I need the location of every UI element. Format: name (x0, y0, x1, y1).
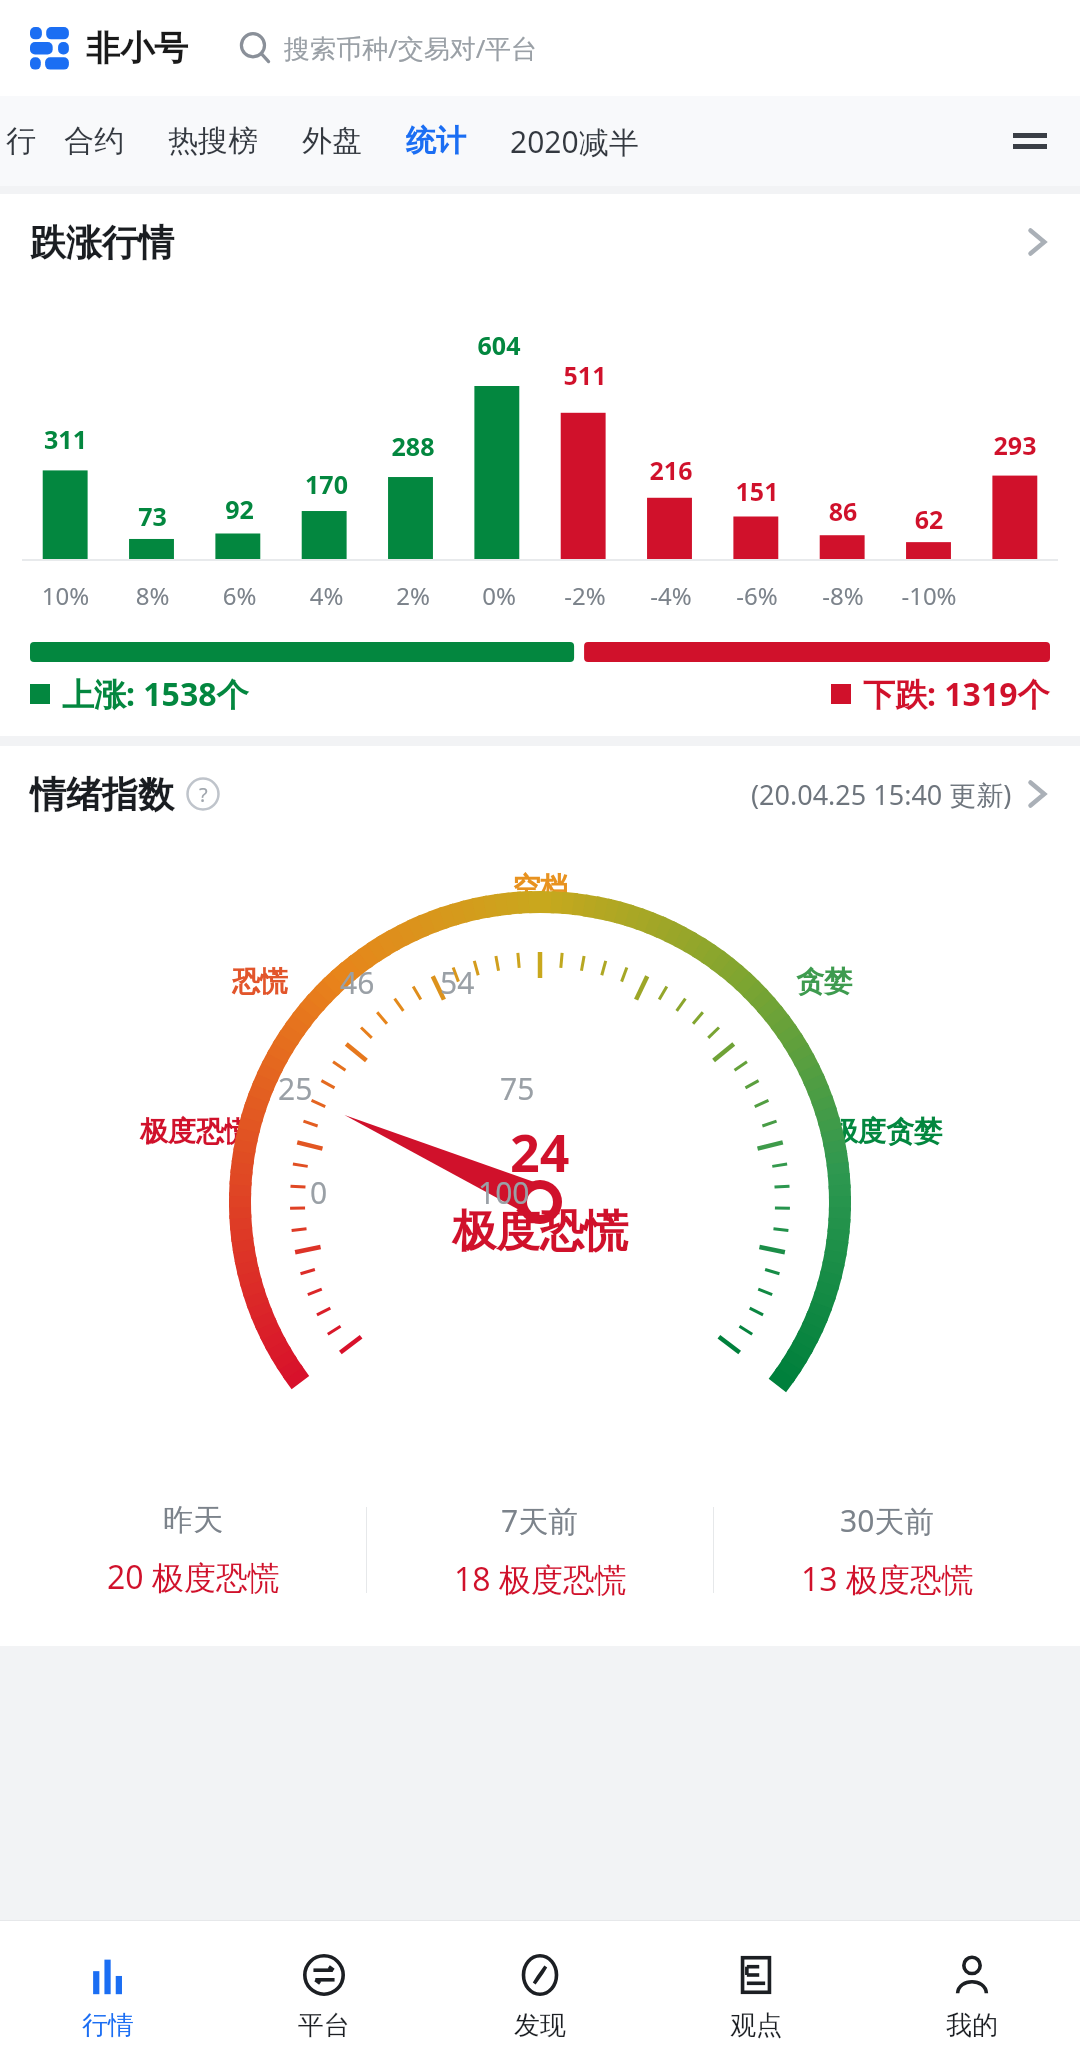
button[interactable]: Menu (1002, 113, 1058, 169)
staticText: 6% (196, 579, 283, 612)
staticText: 极度恐慌 (140, 1114, 252, 1149)
staticText: 空档 (512, 870, 568, 905)
staticText: 100 (478, 1172, 530, 1213)
staticText: 151 (714, 474, 800, 508)
staticText: 统计 (406, 122, 466, 160)
staticText: 热搜榜 (168, 122, 258, 160)
staticText: -10% (886, 579, 972, 612)
staticText: 跌涨行情 (30, 220, 174, 265)
staticText: 2% (370, 579, 456, 612)
staticText: 62 (886, 502, 972, 536)
staticText: 发现 (514, 2009, 566, 2042)
staticText: 288 (370, 429, 456, 463)
staticText: 20 极度恐慌 (107, 1555, 280, 1599)
button[interactable]: 平台 (216, 1921, 432, 2071)
button[interactable]: 跌涨行情 (0, 194, 1080, 290)
staticText: 行 (6, 122, 36, 160)
staticText: ? (199, 781, 208, 808)
staticText: 非小号 (86, 27, 188, 70)
other: Search (238, 31, 272, 65)
button[interactable]: 发现 (432, 1921, 648, 2071)
staticText: 92 (196, 492, 283, 526)
staticText: 0% (456, 579, 542, 612)
staticText: 46 (340, 962, 375, 1003)
staticText: 贪婪 (796, 964, 852, 999)
staticText: 上涨: 1538个 (62, 672, 249, 716)
staticText: 极度恐慌 (452, 1204, 628, 1259)
button[interactable]: 行 (0, 114, 42, 168)
staticText: 13 极度恐慌 (801, 1557, 974, 1601)
staticText: 18 极度恐慌 (454, 1557, 627, 1601)
button[interactable]: 外盘 (280, 114, 384, 168)
staticText: 7天前 (501, 1500, 579, 1541)
staticText: 搜索币种/交易对/平台 (284, 30, 538, 66)
staticText: 合约 (64, 122, 124, 160)
button[interactable]: 30天前 (714, 1480, 1060, 1620)
button[interactable]: 合约 (42, 114, 146, 168)
staticText: 75 (500, 1068, 535, 1109)
staticText: 604 (456, 328, 542, 362)
staticText: 4% (283, 579, 370, 612)
staticText: -2% (542, 579, 628, 612)
staticText: 下跌: 1319个 (863, 672, 1050, 716)
staticText: (20.04.25 15:40 更新) (751, 776, 1012, 813)
staticText: 170 (283, 467, 370, 501)
other: More (1024, 777, 1050, 811)
button[interactable]: Search (238, 30, 1080, 66)
staticText: 24 (510, 1116, 570, 1187)
staticText: 行情 (82, 2009, 134, 2042)
button[interactable]: 行情 (0, 1921, 216, 2071)
staticText: 外盘 (302, 122, 362, 160)
staticText: 73 (109, 499, 196, 533)
staticText: 293 (972, 428, 1058, 462)
button[interactable]: 我的 (864, 1921, 1080, 2071)
staticText: -4% (628, 579, 714, 612)
staticText: 511 (542, 358, 628, 392)
staticText: 8% (109, 579, 196, 612)
staticText: 311 (22, 422, 109, 456)
button[interactable]: 2020减半 (488, 113, 661, 170)
button[interactable]: 统计 (384, 114, 488, 168)
staticText: 平台 (298, 2009, 350, 2042)
staticText: 25 (278, 1068, 313, 1109)
staticText: 我的 (946, 2009, 998, 2042)
staticText: 30天前 (840, 1500, 935, 1541)
other: More (1024, 225, 1050, 259)
staticText: 54 (440, 962, 475, 1003)
button[interactable]: 情绪指数 (0, 746, 1080, 842)
staticText: 10% (22, 579, 109, 612)
staticText: 昨天 (163, 1501, 223, 1539)
staticText: 观点 (730, 2009, 782, 2042)
button[interactable]: 昨天 (20, 1480, 366, 1620)
staticText: 2020减半 (510, 121, 639, 162)
staticText: -6% (714, 579, 800, 612)
button[interactable]: 观点 (648, 1921, 864, 2071)
staticText: 216 (628, 453, 714, 487)
staticText: -8% (800, 579, 886, 612)
button[interactable]: 7天前 (367, 1480, 713, 1620)
staticText: 86 (800, 494, 886, 528)
staticText: 恐慌 (232, 964, 288, 999)
staticText: 情绪指数 (30, 772, 174, 817)
staticText: 0 (310, 1172, 328, 1213)
button[interactable]: 热搜榜 (146, 114, 280, 168)
staticText: 极度贪婪 (830, 1114, 942, 1149)
